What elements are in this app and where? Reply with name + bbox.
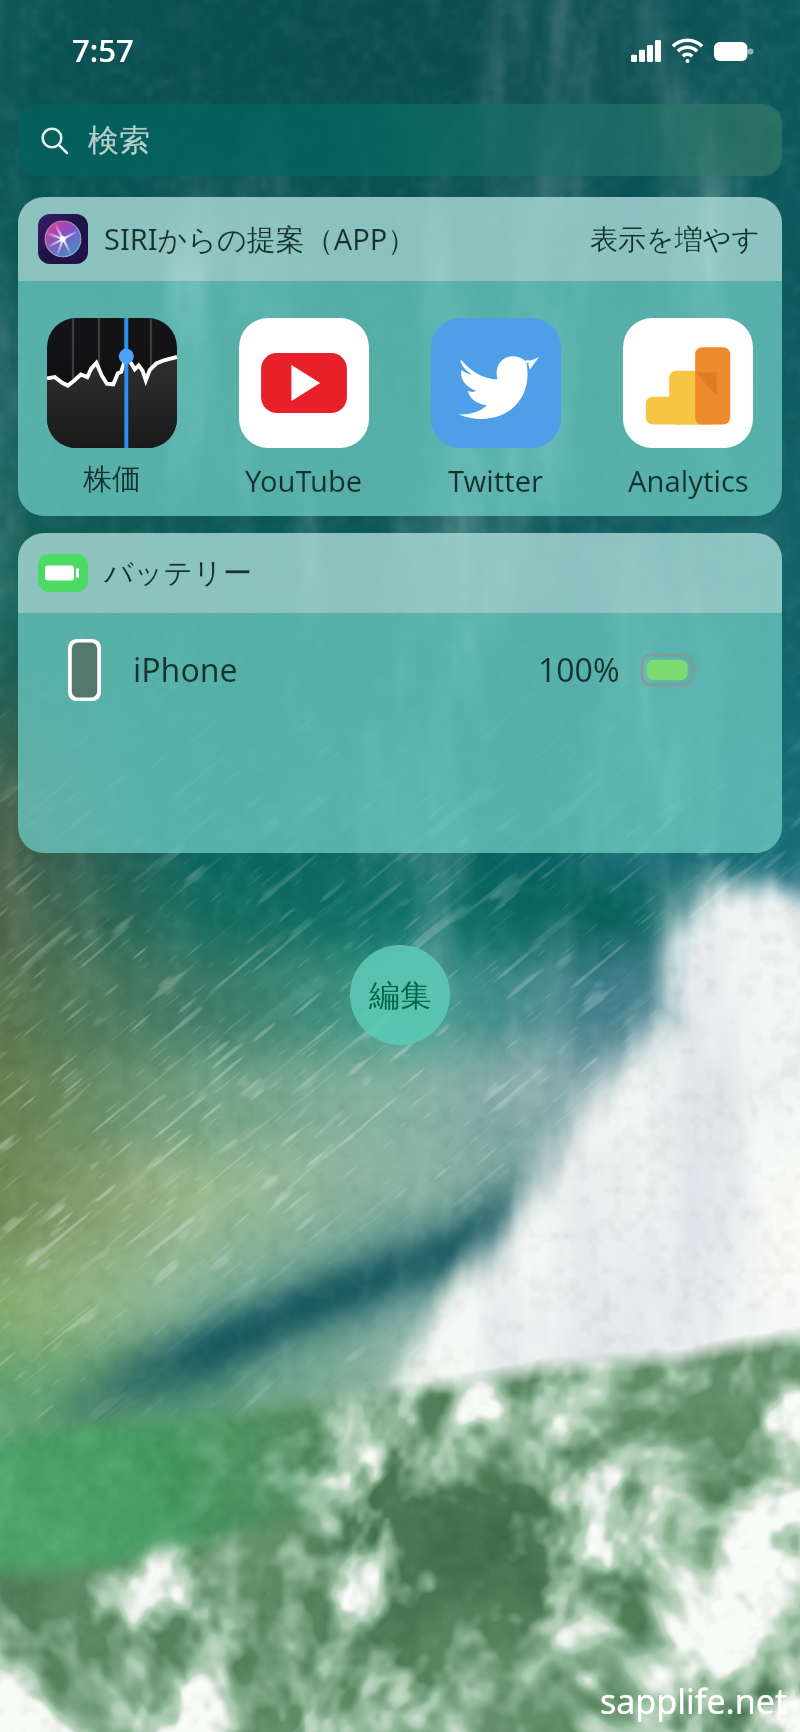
staticText: 株価 <box>83 461 141 498</box>
button[interactable]: Twitter <box>416 281 576 500</box>
button[interactable]: 編集 <box>350 945 450 1045</box>
staticText: 検索 <box>88 121 150 160</box>
staticText: Twitter <box>448 461 544 500</box>
staticText: 編集 <box>369 976 431 1015</box>
staticText: SIRIからの提案（APP） <box>104 219 417 259</box>
staticText: バッテリー <box>104 555 252 592</box>
staticText: iPhone <box>133 648 238 692</box>
button[interactable]: バッテリー <box>18 533 782 613</box>
button[interactable]: SIRIからの提案（APP） <box>18 197 782 281</box>
staticText: sapplife.net <box>600 1678 788 1724</box>
staticText: 7:57 <box>72 29 134 71</box>
button[interactable]: 株価 <box>32 281 192 498</box>
staticText: YouTube <box>245 461 363 500</box>
button[interactable]: YouTube <box>224 281 384 500</box>
staticText: 100% <box>538 648 620 692</box>
button[interactable]: 検索 <box>18 104 782 176</box>
staticText: Analytics <box>628 461 749 500</box>
button[interactable]: Analytics <box>608 281 768 500</box>
staticText: 表示を増やす <box>590 222 760 257</box>
